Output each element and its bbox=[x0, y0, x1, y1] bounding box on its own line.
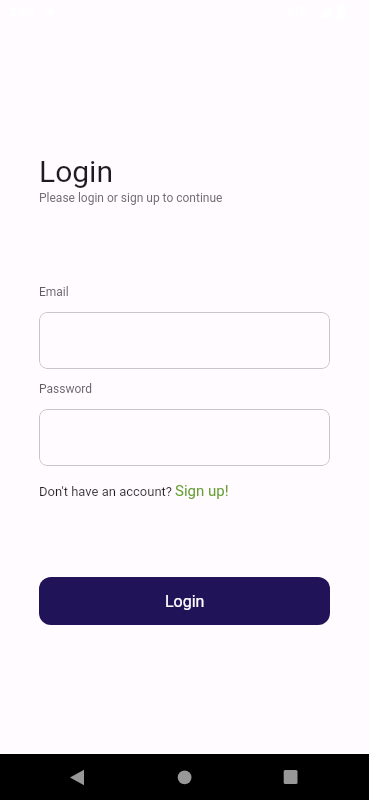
staticText: Please login or sign up to continue bbox=[39, 191, 223, 205]
staticText: Login bbox=[39, 154, 113, 189]
button[interactable] bbox=[39, 312, 330, 369]
button[interactable] bbox=[39, 409, 330, 466]
button[interactable]: Login bbox=[39, 577, 330, 625]
staticText: Login bbox=[165, 592, 205, 611]
button[interactable] bbox=[280, 765, 302, 787]
button[interactable] bbox=[64, 765, 86, 787]
staticText: Email bbox=[39, 285, 69, 299]
staticText: Don't have an account? bbox=[39, 484, 172, 499]
staticText: Password bbox=[39, 382, 93, 396]
button[interactable] bbox=[174, 765, 196, 787]
button[interactable]: Sign up! bbox=[175, 482, 229, 500]
